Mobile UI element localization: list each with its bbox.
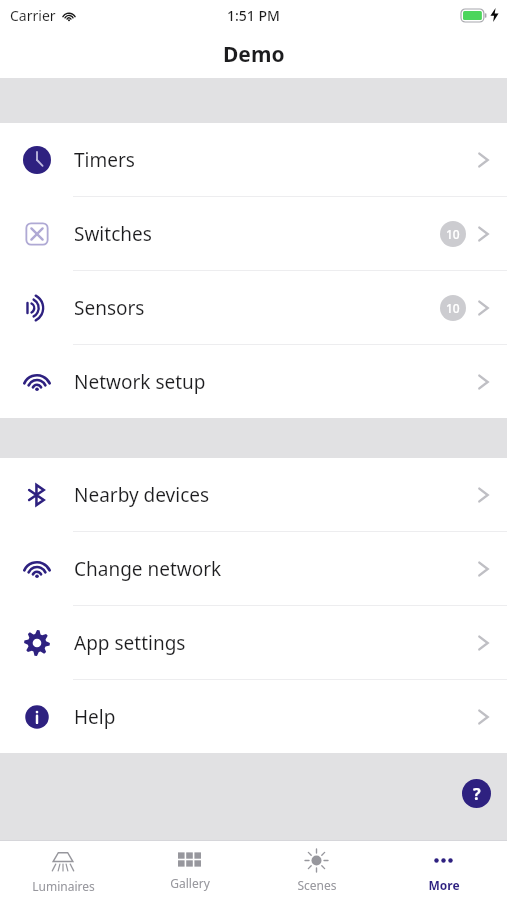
button[interactable]: Timers [0, 123, 507, 196]
staticText: Network setup [74, 369, 478, 395]
staticText: Change network [74, 556, 478, 582]
button[interactable]: App settings [0, 606, 507, 679]
button[interactable]: More [380, 841, 507, 900]
staticText: 10 [446, 300, 460, 316]
staticText: 10 [446, 226, 460, 242]
button[interactable]: Gallery [126, 841, 253, 900]
staticText: Nearby devices [74, 482, 478, 508]
staticText: Demo [223, 40, 285, 69]
button[interactable]: Network setup [0, 345, 507, 418]
button[interactable]: Scenes [253, 841, 380, 900]
button[interactable]: Switches [0, 197, 507, 270]
button[interactable]: Help [462, 779, 491, 808]
staticText: 1:51 PM [227, 6, 280, 25]
staticText: More [428, 877, 460, 893]
staticText: Switches [74, 221, 440, 247]
staticText: Help [74, 704, 478, 730]
staticText: Scenes [297, 877, 337, 893]
button[interactable]: Change network [0, 532, 507, 605]
button[interactable]: Luminaires [0, 841, 126, 900]
staticText: ? [473, 783, 481, 805]
staticText: Sensors [74, 295, 440, 321]
button[interactable]: Nearby devices [0, 458, 507, 531]
button[interactable]: Help [0, 680, 507, 753]
staticText: Luminaires [32, 878, 95, 894]
staticText: Carrier [10, 6, 56, 25]
staticText: App settings [74, 630, 478, 656]
button[interactable]: Sensors [0, 271, 507, 344]
staticText: Gallery [170, 875, 210, 891]
staticText: Timers [74, 147, 478, 173]
